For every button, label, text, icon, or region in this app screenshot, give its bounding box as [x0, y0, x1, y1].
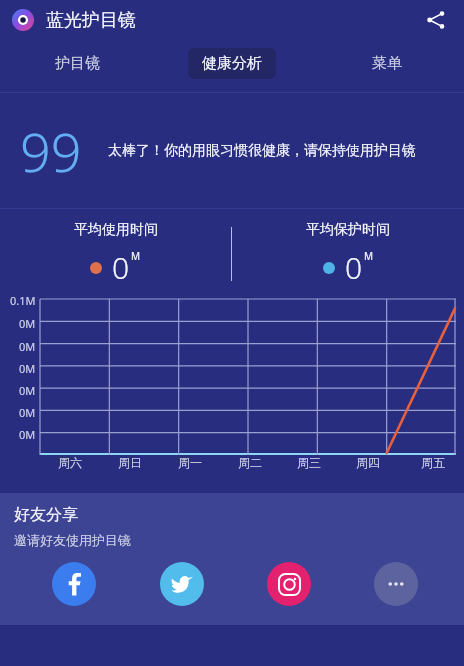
staticText: 太棒了！你的用眼习惯很健康，请保持使用护目镜	[108, 142, 416, 160]
staticText: M	[364, 249, 374, 263]
staticText: 周一	[178, 455, 202, 470]
staticText: 0	[345, 247, 363, 288]
staticText: 护目镜	[55, 54, 100, 73]
staticText: 平均保护时间	[306, 221, 390, 239]
button[interactable]: 健康分析	[188, 48, 276, 79]
staticText: M	[131, 249, 141, 263]
staticText: 周二	[238, 455, 262, 470]
staticText: 平均使用时间	[74, 221, 158, 239]
staticText: 0M	[19, 339, 36, 354]
button[interactable]: Share on Instagram	[267, 562, 311, 606]
staticText: 0M	[19, 316, 36, 331]
staticText: 周五	[421, 455, 445, 470]
staticText: 0M	[19, 383, 36, 398]
staticText: 菜单	[372, 54, 402, 73]
staticText: 0M	[19, 427, 36, 442]
staticText: 周六	[58, 455, 82, 470]
staticText: 0M	[19, 405, 36, 420]
button[interactable]: Share	[420, 4, 452, 36]
staticText: 健康分析	[202, 54, 262, 73]
staticText: 好友分享	[14, 505, 78, 525]
staticText: 0M	[19, 361, 36, 376]
button[interactable]: 菜单	[358, 48, 416, 79]
staticText: 周三	[297, 455, 321, 470]
staticText: 0.1M	[10, 293, 36, 308]
staticText: 蓝光护目镜	[46, 9, 136, 32]
button[interactable]: Share on Facebook	[52, 562, 96, 606]
staticText: 周日	[118, 455, 142, 470]
button[interactable]: More sharing options	[374, 562, 418, 606]
staticText: 99	[20, 114, 82, 188]
staticText: 周四	[356, 455, 380, 470]
staticText: 邀请好友使用护目镜	[14, 532, 131, 548]
button[interactable]: Share on Twitter	[160, 562, 204, 606]
button[interactable]: 护目镜	[41, 48, 114, 79]
staticText: 0	[112, 247, 130, 288]
